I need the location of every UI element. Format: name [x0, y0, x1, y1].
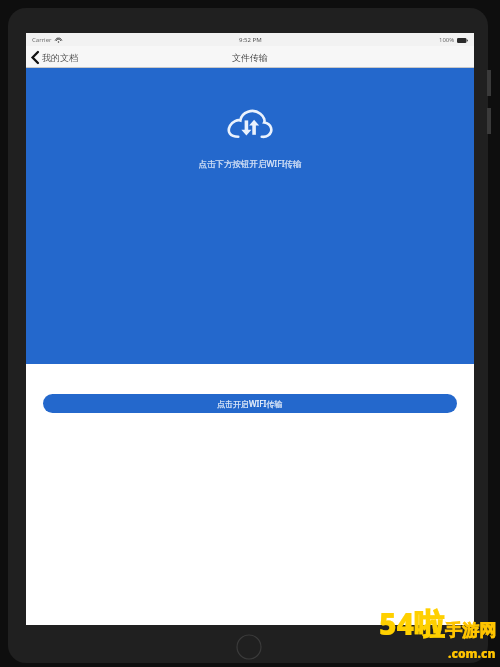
- button[interactable]: 我的文档: [26, 46, 86, 68]
- staticText: 100%: [439, 36, 455, 44]
- staticText: Carrier: [32, 36, 52, 44]
- staticText: 我的文档: [42, 52, 78, 63]
- staticText: 54啦: [379, 603, 445, 644]
- button[interactable]: Home: [236, 634, 262, 660]
- staticText: .com.cn: [448, 645, 496, 661]
- staticText: 手游网: [445, 620, 496, 641]
- staticText: 文件传输: [232, 52, 268, 63]
- staticText: 点击下方按钮开启WIFI传输: [198, 158, 302, 170]
- staticText: 点击开启WIFI传输: [217, 398, 283, 409]
- staticText: 9:52 PM: [239, 36, 262, 44]
- button[interactable]: 点击开启WIFI传输: [43, 394, 457, 413]
